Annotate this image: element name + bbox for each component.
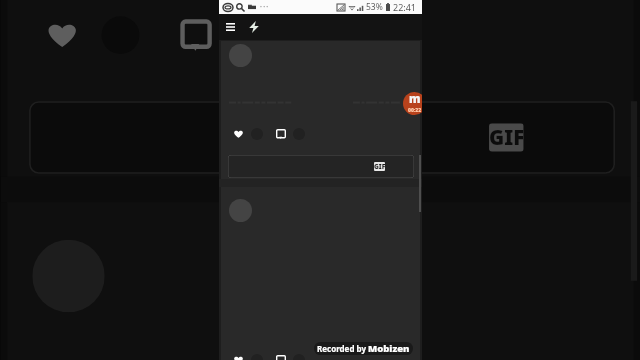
button[interactable]: Profile photo [229,199,252,222]
button[interactable]: Share [228,10,278,60]
button[interactable]: Comment [273,126,289,142]
staticText: GIF [489,123,524,152]
button[interactable]: Activity [246,19,262,35]
button[interactable]: Comment [171,10,221,60]
button[interactable]: Profile photo [32,240,105,312]
button[interactable]: Like [230,126,246,142]
button[interactable]: Profile photo [229,44,252,67]
staticText: 22:41 [393,1,417,13]
staticText: m [409,92,421,107]
staticText: Recorded by [317,343,366,354]
button[interactable]: Insert GIF [489,123,524,152]
button[interactable]: Write a comment [228,155,414,178]
button[interactable]: Like [35,10,86,60]
staticText: GIF [374,162,385,171]
button[interactable]: Repost [249,126,265,142]
button[interactable]: Comment [273,352,289,360]
staticText: 00:22 [408,107,422,114]
button[interactable]: Repost [249,352,265,360]
button[interactable]: Share [291,352,307,360]
staticText: 53% [366,1,383,13]
button[interactable]: Menu [222,19,238,35]
button[interactable]: Insert GIF [374,162,385,171]
button[interactable]: Write a comment [29,101,615,174]
staticText: • • • [260,4,269,11]
staticText: Mobizen [368,342,410,355]
button[interactable]: Like [230,352,246,360]
button[interactable]: Share [291,126,307,142]
